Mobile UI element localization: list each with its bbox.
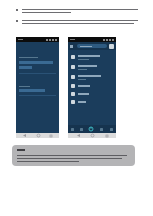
button[interactable]: Recent apps	[102, 133, 112, 138]
button[interactable]: Back	[19, 133, 29, 138]
button[interactable]: Recent apps	[46, 133, 56, 138]
button[interactable]: Back	[73, 133, 83, 138]
button[interactable]	[77, 44, 107, 48]
button[interactable]: More	[106, 125, 116, 133]
button[interactable]: Home	[87, 133, 97, 138]
button[interactable]: Account	[109, 44, 114, 49]
button[interactable]	[68, 72, 116, 82]
button[interactable]	[68, 90, 116, 98]
button[interactable]	[68, 82, 116, 90]
button[interactable]: Home	[68, 125, 77, 133]
button[interactable]	[68, 98, 116, 106]
button[interactable]	[68, 62, 116, 72]
button[interactable]: Home	[33, 133, 43, 138]
button[interactable]: Menu	[70, 44, 75, 49]
button[interactable]	[68, 52, 116, 62]
button[interactable]: Library	[77, 125, 86, 133]
button[interactable]: Apps	[96, 125, 106, 133]
button[interactable]: Devices	[86, 125, 96, 133]
